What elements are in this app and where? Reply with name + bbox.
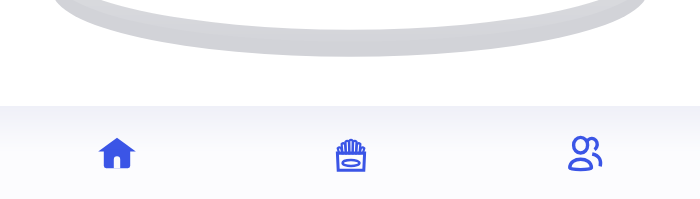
button[interactable]: Profile [467, 106, 700, 199]
button[interactable]: Home [0, 106, 234, 199]
button[interactable]: Menu [234, 106, 467, 199]
